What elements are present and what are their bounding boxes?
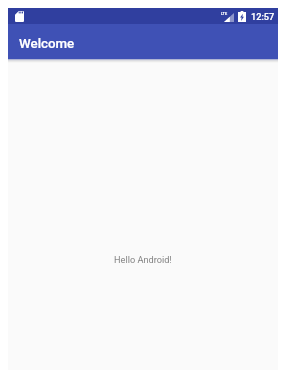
other: LTE signal strength <box>221 11 234 22</box>
button[interactable]: Welcome <box>8 24 278 59</box>
other: Battery charging <box>238 11 246 22</box>
staticText: 12:57 <box>251 11 275 22</box>
other: SD card <box>15 11 24 22</box>
staticText: Hello Android! <box>114 254 172 265</box>
staticText: LTE <box>221 11 228 15</box>
staticText: Welcome <box>19 36 75 52</box>
